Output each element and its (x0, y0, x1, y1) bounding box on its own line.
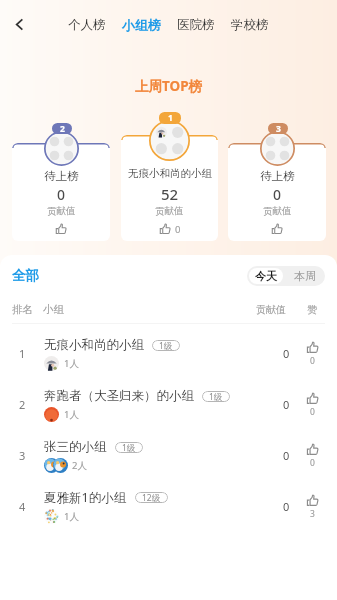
button[interactable]: 待上榜 (228, 143, 326, 241)
button[interactable]: 本周 (285, 266, 325, 286)
staticText: 无痕小和尚的小组 (44, 337, 144, 353)
staticText: 3 (310, 508, 315, 520)
staticText: 赞 (307, 303, 317, 316)
staticText: 0 (283, 448, 290, 463)
staticText: 0 (310, 355, 315, 367)
staticText: 个人榜 (68, 17, 106, 33)
staticText: 1人 (64, 510, 79, 523)
staticText: 0 (273, 185, 282, 204)
staticText: 1级 (159, 340, 173, 351)
staticText: 1人 (64, 357, 79, 370)
button[interactable]: 医院榜 (169, 0, 223, 49)
staticText: 张三的小组 (44, 439, 107, 455)
staticText: 0 (310, 457, 315, 469)
staticText: 贡献值 (263, 205, 292, 217)
staticText: 1人 (64, 408, 79, 421)
staticText: 4 (19, 499, 26, 514)
staticText: 1级 (122, 442, 136, 453)
staticText: 3 (19, 448, 26, 463)
staticText: 学校榜 (231, 17, 269, 33)
staticText: 2 (19, 397, 26, 412)
staticText: 无痕小和尚的小组 (128, 167, 212, 180)
staticText: 今天 (255, 269, 277, 283)
staticText: 贡献值 (155, 205, 184, 217)
staticText: 1 (168, 112, 173, 124)
staticText: 医院榜 (177, 17, 215, 33)
staticText: 全部 (12, 267, 39, 284)
staticText: 1级 (209, 391, 223, 402)
staticText: 3 (276, 123, 281, 134)
staticText: 0 (283, 346, 290, 361)
staticText: 上周TOP榜 (0, 77, 337, 95)
staticText: 0 (175, 223, 181, 236)
button[interactable]: 待上榜 (12, 143, 110, 241)
button[interactable]: 今天 (249, 268, 283, 284)
staticText: 小组榜 (122, 17, 161, 33)
staticText: 夏雅新1的小组 (44, 489, 127, 506)
staticText: 待上榜 (44, 169, 79, 183)
button[interactable]: 无痕小和尚的小组 (121, 135, 218, 241)
staticText: 奔跑者（大圣归来）的小组 (44, 388, 194, 404)
staticText: 贡献值 (256, 303, 286, 316)
staticText: 2 (60, 123, 65, 134)
staticText: 本周 (294, 269, 316, 283)
staticText: 0 (283, 499, 290, 514)
staticText: 贡献值 (47, 205, 76, 217)
button[interactable]: 2 (0, 379, 337, 430)
button[interactable]: 4 (0, 481, 337, 532)
staticText: 待上榜 (260, 169, 295, 183)
button[interactable]: 1 (0, 328, 337, 379)
staticText: 1 (19, 346, 26, 361)
button[interactable]: 学校榜 (223, 0, 277, 49)
button[interactable]: 个人榜 (60, 0, 114, 49)
button[interactable]: 3 (0, 430, 337, 481)
staticText: 小组 (43, 303, 64, 316)
staticText: 排名 (12, 303, 33, 316)
staticText: 52 (161, 184, 179, 204)
staticText: 12级 (142, 492, 161, 503)
staticText: 2人 (72, 459, 87, 472)
staticText: 0 (283, 397, 290, 412)
button[interactable]: 小组榜 (114, 0, 169, 49)
staticText: 0 (310, 406, 315, 418)
button[interactable]: Back (0, 0, 38, 49)
staticText: 0 (57, 185, 66, 204)
